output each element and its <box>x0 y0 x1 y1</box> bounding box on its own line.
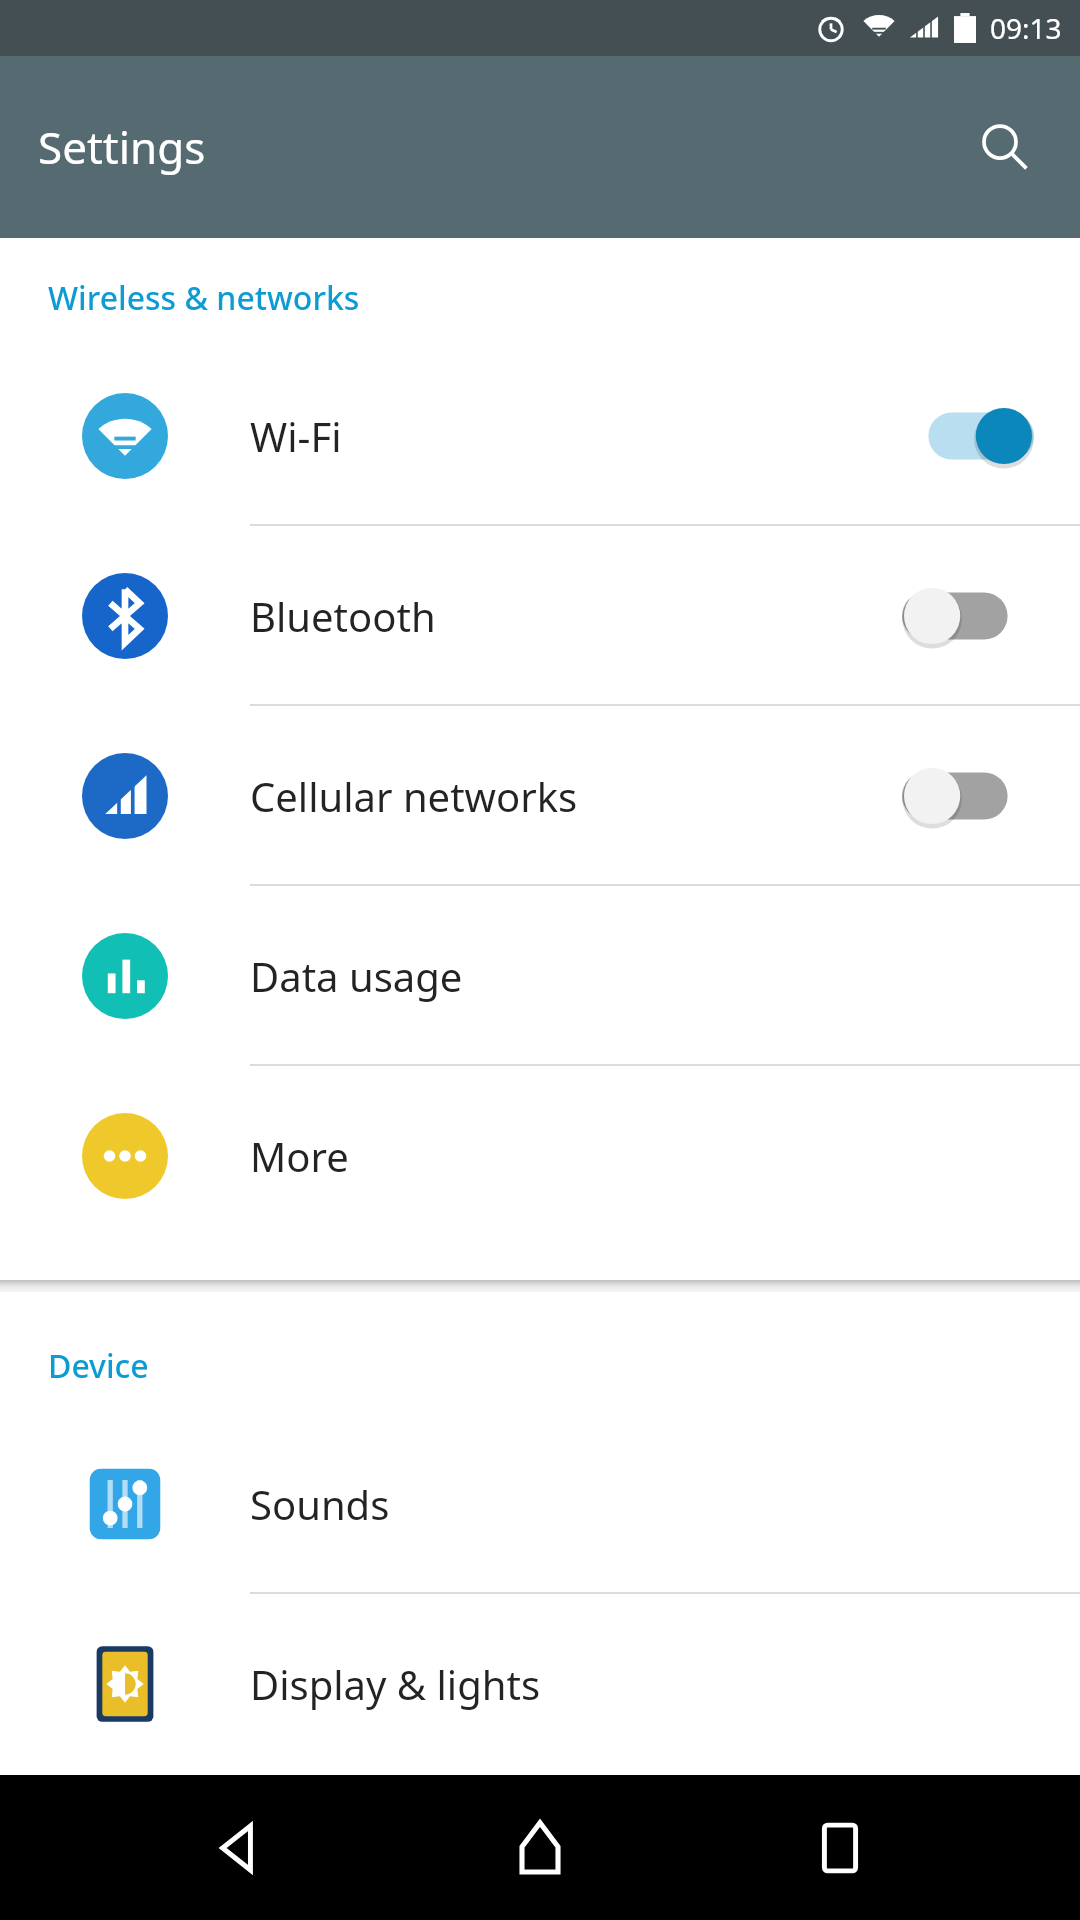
button[interactable]: Bluetooth <box>0 526 1080 706</box>
button[interactable]: Recent apps <box>780 1788 900 1908</box>
staticText: Cellular networks <box>250 769 902 823</box>
staticText: Wi-Fi <box>250 409 902 463</box>
button[interactable]: Toggle off <box>902 578 1034 654</box>
button[interactable]: Data usage <box>0 886 1080 1066</box>
staticText: Settings <box>38 117 206 177</box>
button[interactable]: Display & lights <box>0 1594 1080 1774</box>
staticText: Sounds <box>250 1477 1080 1531</box>
button[interactable]: Wi-Fi <box>0 346 1080 526</box>
button[interactable]: Sounds <box>0 1414 1080 1594</box>
staticText: Device <box>48 1344 149 1388</box>
staticText: Data usage <box>250 949 1080 1003</box>
staticText: Display & lights <box>250 1657 1080 1711</box>
staticText: Bluetooth <box>250 589 902 643</box>
button[interactable]: Toggle on <box>902 398 1034 474</box>
staticText: 09:13 <box>990 9 1062 47</box>
staticText: Wireless & networks <box>48 276 360 320</box>
button[interactable]: Search <box>958 101 1050 193</box>
button[interactable]: Home <box>480 1788 600 1908</box>
button[interactable]: Toggle off <box>902 758 1034 834</box>
button[interactable]: More <box>0 1066 1080 1246</box>
button[interactable]: Back <box>180 1788 300 1908</box>
staticText: More <box>250 1129 1080 1183</box>
button[interactable]: Cellular networks <box>0 706 1080 886</box>
